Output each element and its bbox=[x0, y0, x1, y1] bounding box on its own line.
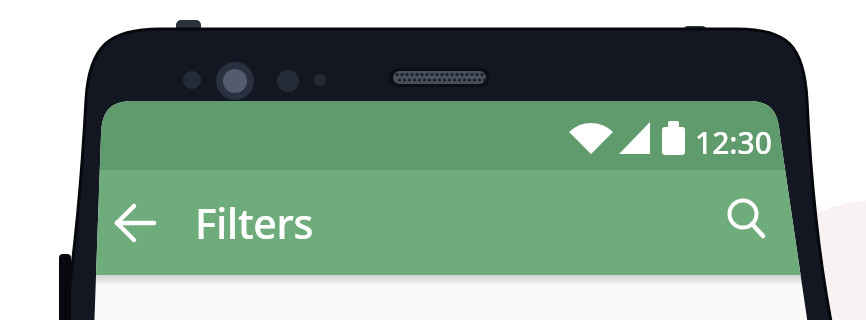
staticText: Filters bbox=[195, 195, 314, 251]
button[interactable] bbox=[110, 198, 160, 248]
staticText: 12:30 bbox=[695, 122, 772, 163]
button[interactable] bbox=[718, 190, 770, 242]
